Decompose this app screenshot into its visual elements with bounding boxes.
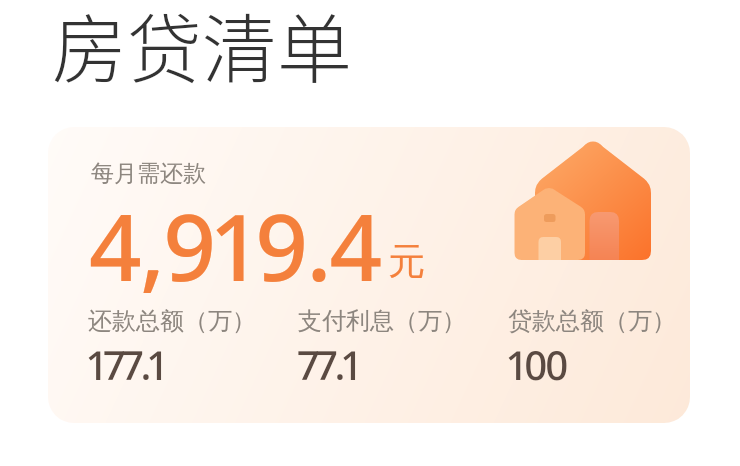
staticText: 还款总额（万） (88, 306, 256, 336)
staticText: 每月需还款 (91, 159, 206, 188)
staticText: 元 (388, 238, 425, 285)
button[interactable]: 每月需还款 (48, 127, 690, 423)
staticText: 支付利息（万） (298, 306, 466, 336)
staticText: 77.1 (298, 337, 359, 391)
staticText: 贷款总额（万） (508, 306, 676, 336)
staticText: 4,919.4 (89, 183, 381, 308)
staticText: 房贷清单 (52, 0, 353, 99)
staticText: 100 (508, 337, 567, 391)
staticText: 177.1 (88, 337, 165, 391)
